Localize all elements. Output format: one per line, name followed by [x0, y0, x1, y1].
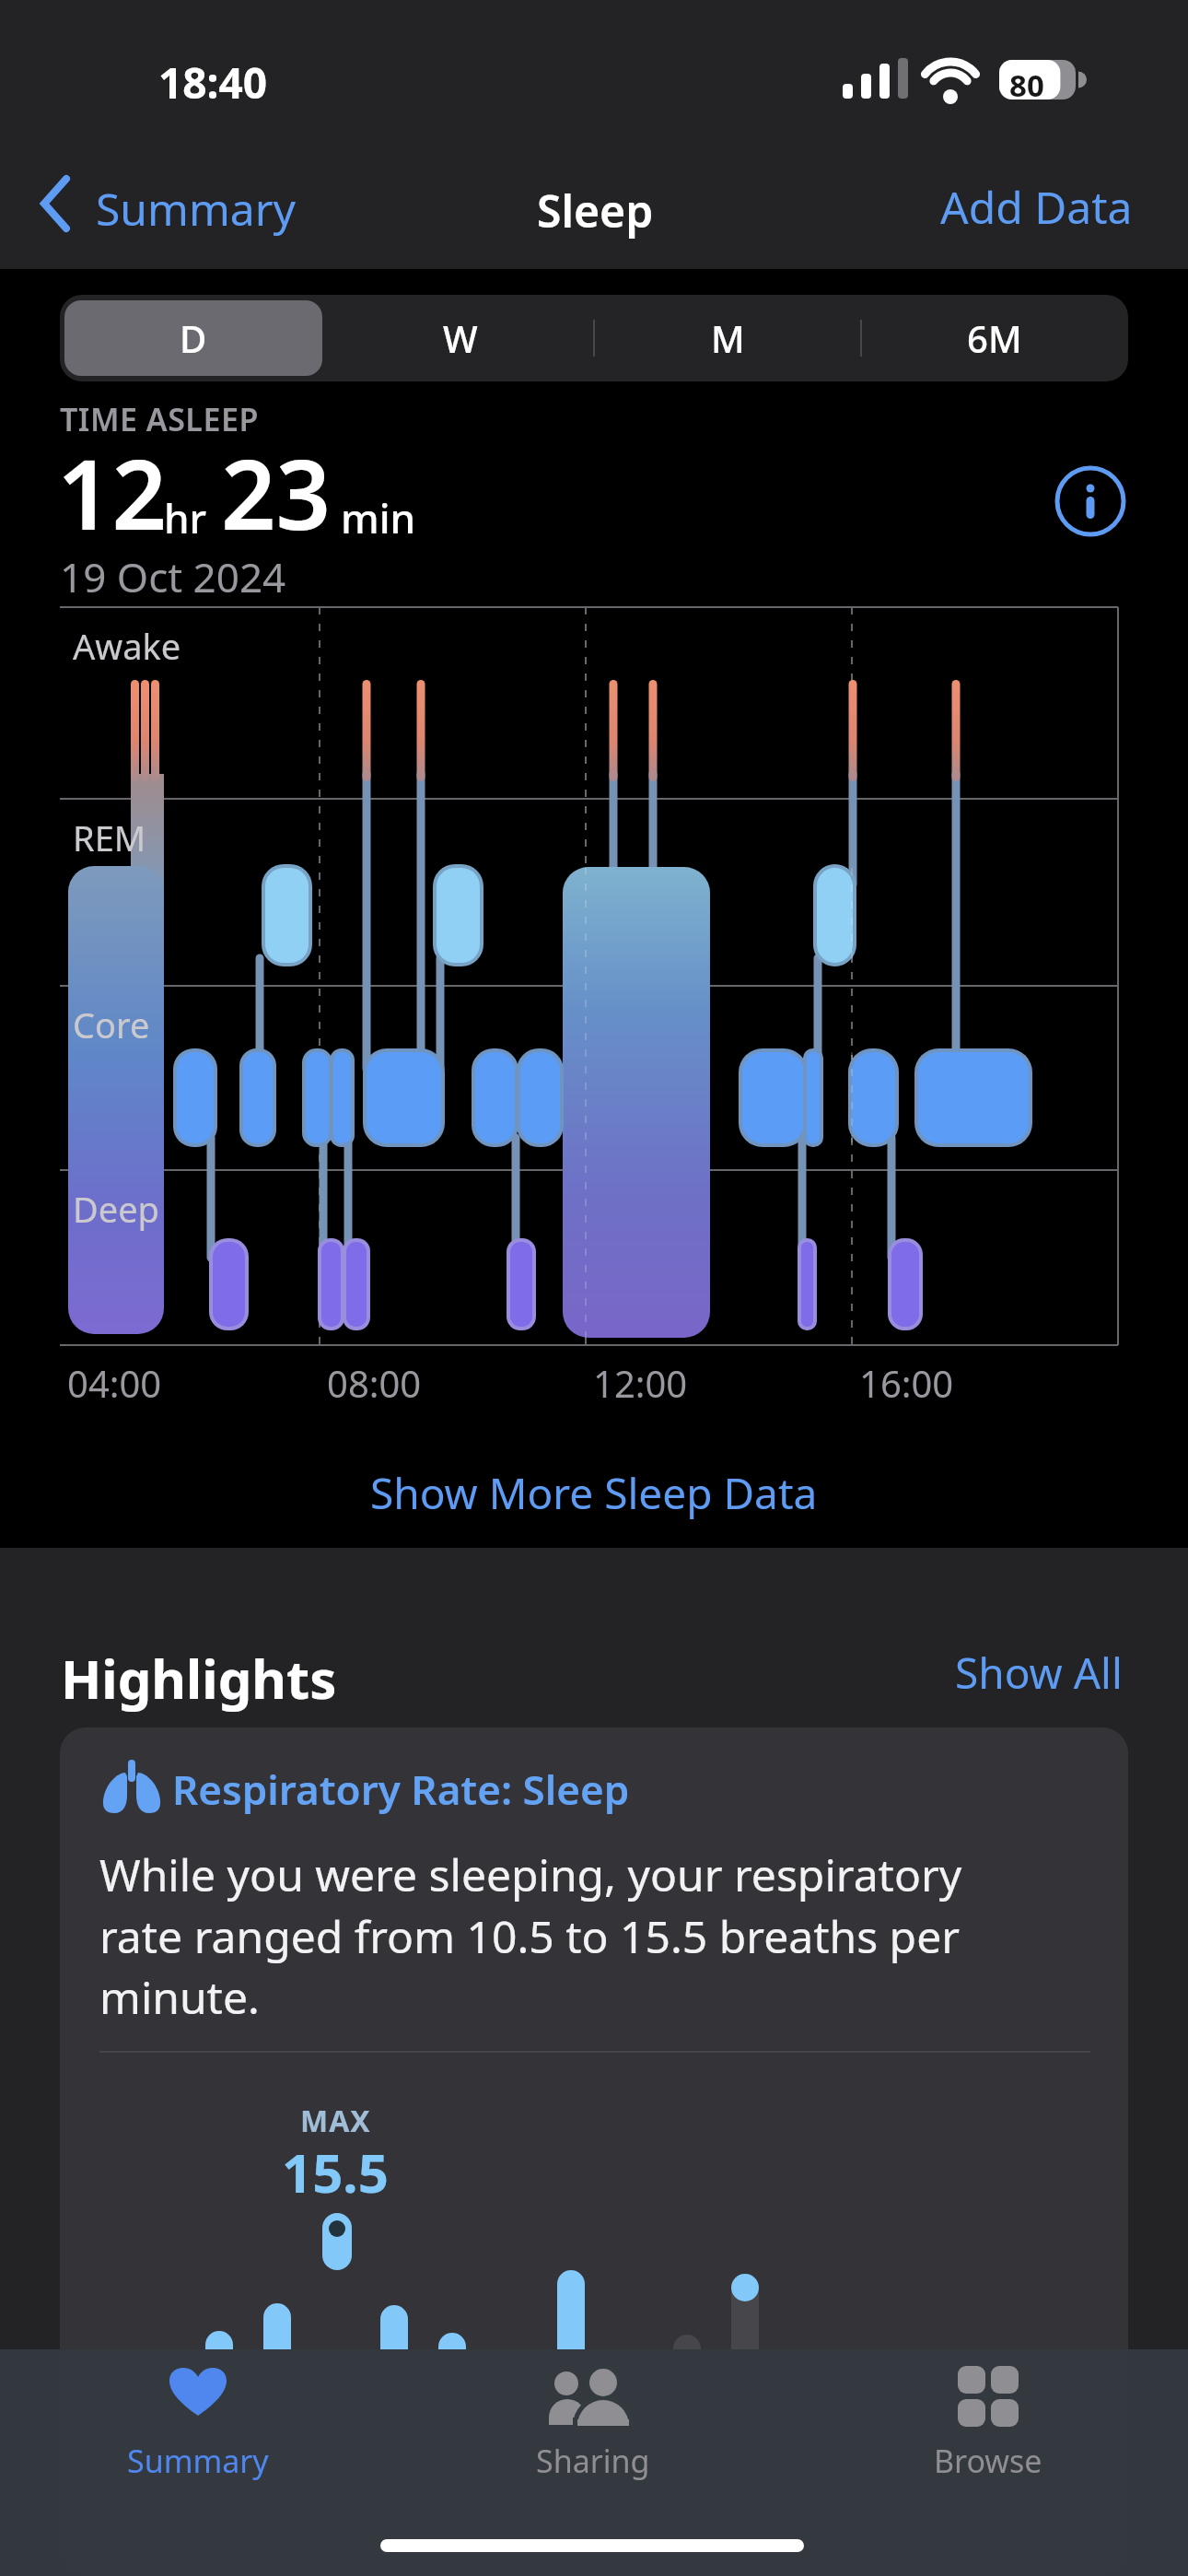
button[interactable]: Add Data [926, 168, 1147, 245]
button[interactable] [60, 1727, 1128, 2576]
button[interactable]: Show More Sleep Data [327, 1456, 861, 1529]
staticText: Sharing [536, 2440, 650, 2480]
staticText: 08:00 [327, 1358, 422, 1408]
staticText: Deep [73, 1185, 159, 1233]
staticText: 04:00 [67, 1358, 162, 1408]
staticText: Summary [127, 2440, 269, 2480]
staticText: Highlights [61, 1642, 337, 1715]
staticText: Summary [96, 179, 297, 239]
staticText: Core [73, 1001, 150, 1048]
staticText: 15.5 [282, 2136, 389, 2200]
button[interactable]: Summary [106, 2355, 290, 2493]
staticText: 19 Oct 2024 [60, 549, 286, 604]
button[interactable]: Summary [28, 164, 313, 247]
staticText: W [443, 313, 478, 363]
staticText: TIME ASLEEP [60, 398, 259, 440]
staticText: hr [164, 490, 207, 545]
staticText: min [341, 490, 416, 545]
button[interactable]: Browse [896, 2355, 1080, 2493]
staticText: Awake [73, 622, 181, 670]
staticText: 12 [57, 427, 167, 558]
staticText: 6M [967, 313, 1022, 363]
staticText: Respiratory Rate: Sleep [172, 1762, 630, 1817]
button[interactable]: Show All [928, 1640, 1149, 1704]
staticText: D [180, 313, 207, 363]
staticText: 18:40 [158, 53, 268, 111]
staticText: Show All [955, 1644, 1123, 1702]
staticText: 23 [221, 427, 331, 558]
staticText: 16:00 [859, 1358, 954, 1408]
staticText: MAX [300, 2101, 371, 2137]
button[interactable]: W [327, 295, 594, 381]
button[interactable]: D [60, 295, 327, 381]
button[interactable] [1054, 465, 1126, 537]
staticText: While you were sleeping, your respirator… [99, 1844, 962, 2027]
staticText: REM [73, 814, 146, 861]
staticText: 12:00 [593, 1358, 688, 1408]
staticText: 80 [1009, 64, 1044, 106]
staticText: Browse [934, 2440, 1042, 2480]
staticText: Sleep [537, 181, 654, 240]
button[interactable]: 6M [861, 295, 1128, 381]
button[interactable]: Sharing [501, 2355, 685, 2493]
button[interactable]: M [594, 295, 861, 381]
staticText: Add Data [940, 177, 1133, 237]
staticText: Show More Sleep Data [370, 1464, 818, 1522]
staticText: M [711, 313, 745, 363]
